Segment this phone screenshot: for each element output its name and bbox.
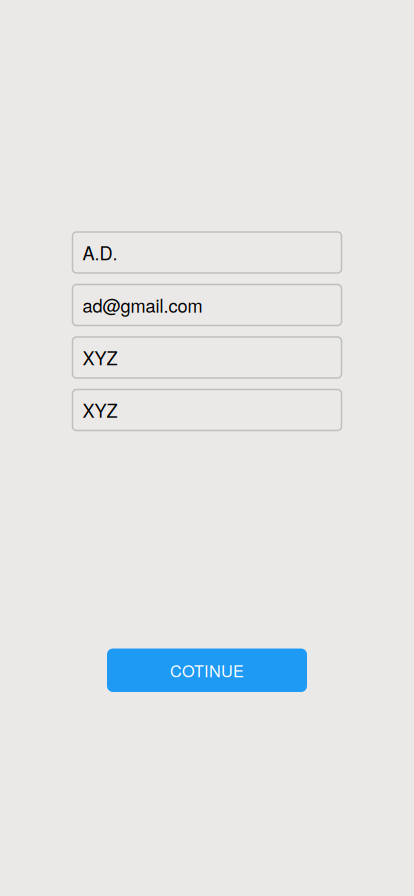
staticText: XYZ <box>82 397 117 423</box>
button[interactable]: XYZ <box>72 389 341 430</box>
button[interactable]: COTINUE <box>107 648 307 692</box>
button[interactable]: A.D. <box>72 232 341 273</box>
button[interactable]: ad@gmail.com <box>72 284 341 325</box>
staticText: XYZ <box>82 344 117 370</box>
staticText: ad@gmail.com <box>82 292 202 318</box>
staticText: A.D. <box>82 239 117 265</box>
button[interactable]: XYZ <box>72 337 341 378</box>
staticText: COTINUE <box>170 659 244 682</box>
